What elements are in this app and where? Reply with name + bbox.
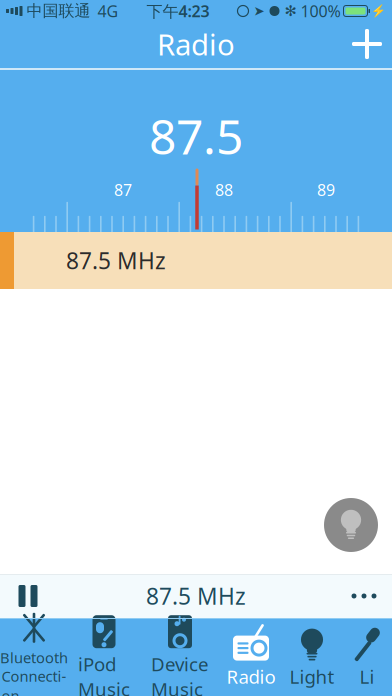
staticText: ⚡ [371, 4, 386, 18]
staticText: Radio [226, 664, 275, 689]
staticText: Light [289, 664, 334, 689]
staticText: Device Music [151, 652, 209, 696]
button[interactable]: Bluetooth [0, 618, 68, 696]
staticText: Connection [1, 666, 66, 696]
staticText: ➤ [253, 3, 264, 18]
button[interactable]: Add station [342, 21, 392, 67]
staticText: 88 [215, 179, 233, 200]
button[interactable]: Flashlight [320, 494, 382, 556]
staticText: 87.5 MHz [146, 581, 246, 611]
staticText: ✻ [284, 3, 296, 19]
button[interactable]: Device Music [140, 618, 220, 696]
staticText: 87 [114, 179, 132, 200]
button[interactable]: 87.5 MHz [0, 232, 392, 289]
staticText: 87.5 MHz [66, 245, 166, 275]
button[interactable]: Light [282, 618, 342, 696]
staticText: Radio [157, 24, 235, 63]
staticText: iPod Music [78, 652, 130, 696]
staticText: 89 [317, 179, 335, 200]
staticText: Li [359, 664, 374, 689]
staticText: 中国联通 [26, 1, 90, 21]
button[interactable]: Li [342, 618, 392, 696]
staticText: 4G [97, 0, 118, 22]
staticText: Bluetooth [0, 648, 68, 667]
button[interactable]: Radio [220, 618, 282, 696]
button[interactable]: More options [336, 574, 392, 618]
button[interactable]: iPod Music [68, 618, 140, 696]
staticText: 87.5 [149, 104, 243, 168]
button[interactable]: Pause [0, 574, 56, 618]
staticText: 100% [300, 0, 340, 22]
staticText: 下午4:23 [146, 0, 209, 22]
